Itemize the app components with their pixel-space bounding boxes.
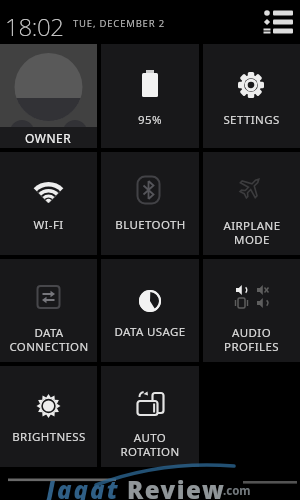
button[interactable]: DATA USAGE — [101, 259, 199, 362]
button[interactable]: WI-FI — [0, 152, 97, 255]
staticText: Jagat — [46, 473, 120, 500]
button[interactable]: DATA CONNECTION — [0, 259, 97, 362]
button[interactable]: BLUETOOTH — [101, 152, 199, 255]
button[interactable]: AUDIO PROFILES — [203, 259, 300, 362]
staticText: AIRPLANE MODE — [223, 218, 281, 247]
button[interactable] — [0, 44, 97, 148]
staticText: DATA USAGE — [114, 324, 186, 340]
staticText: Review — [127, 473, 226, 500]
button[interactable]: AIRPLANE MODE — [203, 152, 300, 255]
staticText: AUTO ROTATION — [120, 430, 180, 459]
staticText: BRIGHTNESS — [12, 429, 86, 445]
staticText: WI-FI — [33, 217, 64, 233]
button[interactable]: AUTO ROTATION — [101, 366, 199, 467]
button[interactable]: BRIGHTNESS — [0, 366, 97, 467]
staticText: 95% — [138, 112, 162, 128]
staticText: OWNER — [25, 130, 72, 146]
staticText: .com — [223, 483, 251, 499]
staticText: AUDIO PROFILES — [224, 325, 279, 354]
button[interactable]: SETTINGS — [203, 44, 300, 148]
staticText: TUE, DECEMBER 2 — [73, 17, 165, 30]
staticText: SETTINGS — [223, 112, 280, 128]
button[interactable]: 95% — [101, 44, 199, 148]
staticText: 18:02 — [5, 10, 64, 43]
staticText: BLUETOOTH — [115, 217, 186, 233]
staticText: DATA CONNECTION — [9, 325, 89, 354]
